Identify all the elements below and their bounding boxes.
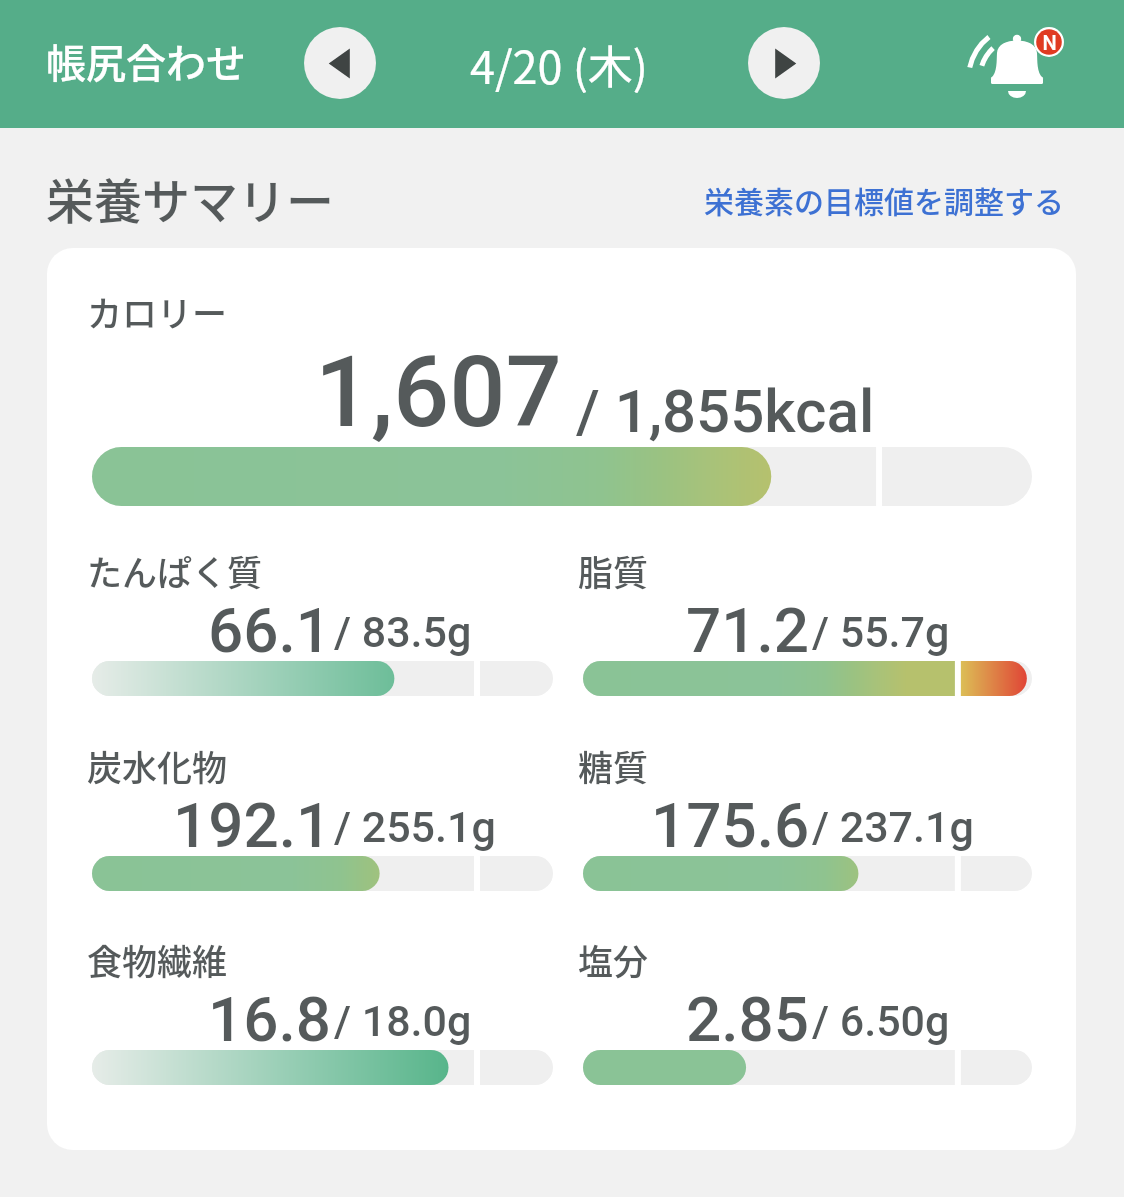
staticText: 1,607 xyxy=(315,334,562,450)
button[interactable]: 塩分 xyxy=(583,935,1032,1085)
button[interactable]: 栄養素の目標値を調整する xyxy=(704,178,1064,221)
button[interactable]: たんぱく質 xyxy=(92,546,553,696)
staticText: 炭水化物 xyxy=(87,740,228,791)
staticText: / 255.1g xyxy=(334,802,496,852)
button[interactable]: Notifications xyxy=(955,10,1075,120)
staticText: 栄養素の目標値を調整する xyxy=(704,178,1064,221)
staticText: 2.85 xyxy=(686,983,810,1056)
staticText: たんぱく質 xyxy=(87,545,263,596)
staticText: N xyxy=(1042,31,1057,54)
button[interactable]: 帳尻合わせ xyxy=(46,32,246,90)
staticText: / 83.5g xyxy=(334,607,472,657)
staticText: / 1,855kcal xyxy=(576,376,875,446)
staticText: 192.1 xyxy=(173,789,332,862)
staticText: 66.1 xyxy=(208,594,332,667)
staticText: / 6.50g xyxy=(812,996,950,1046)
staticText: 糖質 xyxy=(578,740,649,791)
staticText: 脂質 xyxy=(578,545,649,596)
button[interactable]: 脂質 xyxy=(583,546,1032,696)
staticText: カロリー xyxy=(87,286,228,337)
staticText: 塩分 xyxy=(578,934,649,985)
button[interactable]: 糖質 xyxy=(583,741,1032,891)
staticText: 帳尻合わせ xyxy=(46,32,246,90)
staticText: 食物繊維 xyxy=(87,934,228,985)
staticText: / 55.7g xyxy=(812,607,950,657)
staticText: 栄養サマリー xyxy=(46,163,335,233)
staticText: / 18.0g xyxy=(334,996,472,1046)
staticText: 175.6 xyxy=(651,789,810,862)
button[interactable]: 炭水化物 xyxy=(92,741,553,891)
staticText: / 237.1g xyxy=(812,802,974,852)
button[interactable]: Next day xyxy=(748,27,820,99)
staticText: 4/20 (木) xyxy=(470,32,649,97)
button[interactable]: 栄養サマリー xyxy=(46,163,335,233)
staticText: 71.2 xyxy=(686,594,810,667)
button[interactable]: 食物繊維 xyxy=(92,935,553,1085)
staticText: 16.8 xyxy=(208,983,332,1056)
button[interactable]: Previous day xyxy=(304,27,376,99)
